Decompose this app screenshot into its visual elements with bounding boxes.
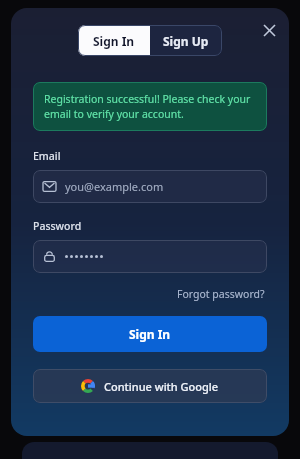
button[interactable]: Sign In <box>78 25 150 56</box>
button[interactable]: Continue with Google <box>33 369 267 403</box>
button[interactable]: Forgot password? <box>175 285 267 303</box>
staticText: Sign In <box>129 326 171 342</box>
button[interactable] <box>33 240 267 273</box>
staticText: you@example.com <box>65 179 164 194</box>
staticText: Sign Up <box>163 33 209 49</box>
staticText: Registration successful! Please check yo… <box>44 92 256 121</box>
staticText: Email <box>33 149 61 163</box>
staticText: Sign In <box>93 33 135 49</box>
button[interactable]: Sign In <box>33 316 267 352</box>
staticText: Password <box>33 219 82 233</box>
staticText: Continue with Google <box>104 379 219 394</box>
button[interactable]: Sign Up <box>150 25 222 56</box>
button[interactable]: you@example.com <box>33 170 267 203</box>
button[interactable]: Close <box>255 16 283 44</box>
staticText: Forgot password? <box>177 287 265 301</box>
